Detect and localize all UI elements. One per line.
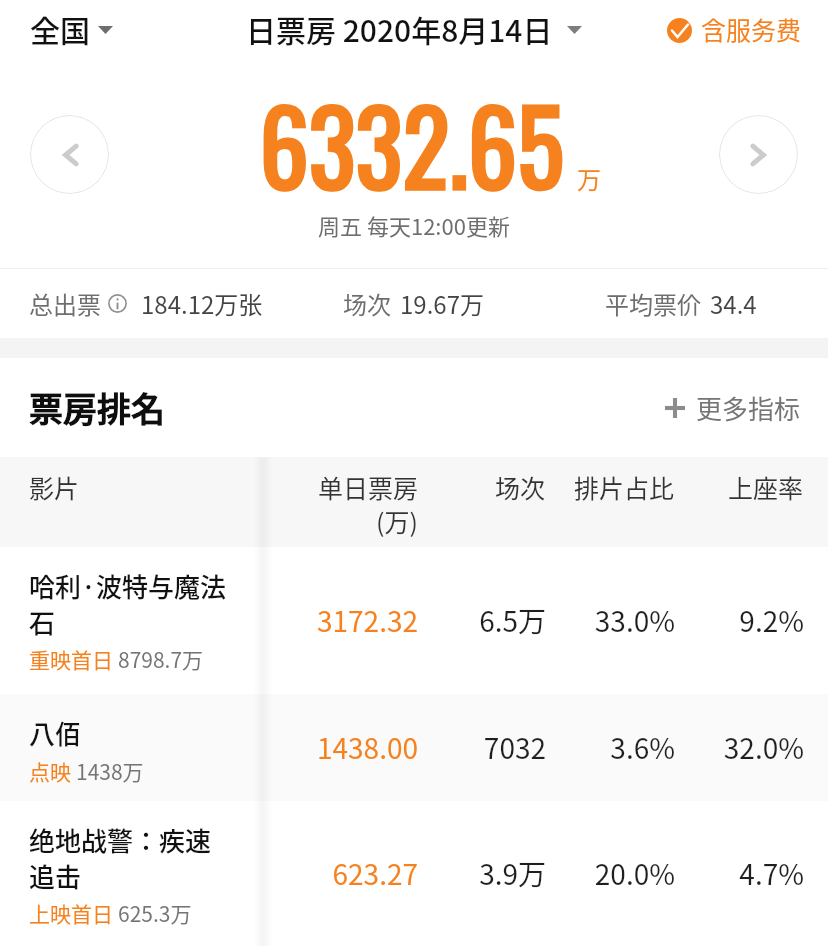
- staticText: 重映首日: [29, 644, 113, 674]
- staticText: 8798.7万: [118, 644, 204, 674]
- staticText: 上座率: [728, 469, 804, 505]
- staticText: 19.67万: [400, 286, 484, 321]
- staticText: 影片: [29, 469, 80, 505]
- staticText: 7032: [483, 727, 546, 768]
- button[interactable]: Previous day: [30, 115, 109, 194]
- button[interactable]: 更多指标: [665, 358, 801, 457]
- staticText: 单日票房 (万): [317, 469, 418, 539]
- button[interactable]: 八佰: [0, 694, 828, 801]
- staticText: 排片占比: [574, 469, 675, 505]
- staticText: 周五 每天12:00更新: [318, 209, 510, 241]
- staticText: 石: [29, 603, 56, 641]
- button[interactable]: Next day: [719, 115, 798, 194]
- staticText: 32.0%: [723, 727, 804, 768]
- staticText: 20.0%: [594, 853, 675, 894]
- staticText: 平均票价: [605, 286, 701, 321]
- button[interactable]: 全国: [30, 0, 113, 58]
- staticText: 更多指标: [696, 389, 801, 427]
- staticText: 总出票: [29, 286, 101, 321]
- staticText: 34.4: [710, 286, 757, 321]
- staticText: 绝地战警：疾速: [29, 821, 212, 859]
- staticText: 625.3万: [118, 898, 192, 928]
- staticText: 9.2%: [739, 600, 804, 641]
- staticText: 3.9万: [479, 853, 546, 894]
- staticText: 万: [577, 161, 601, 196]
- staticText: 1438万: [76, 756, 144, 786]
- staticText: 场次: [495, 469, 546, 505]
- staticText: 1438.00: [316, 727, 418, 768]
- staticText: 全国: [30, 7, 90, 50]
- staticText: 日票房 2020年8月14日: [246, 7, 553, 50]
- staticText: 623.27: [332, 853, 418, 894]
- staticText: 八佰: [29, 714, 82, 752]
- button[interactable]: 绝地战警：疾速: [0, 801, 828, 946]
- staticText: 场次: [343, 286, 391, 321]
- button[interactable]: 含服务费: [667, 0, 802, 59]
- staticText: 3.6%: [610, 727, 675, 768]
- staticText: 6.5万: [479, 600, 546, 641]
- staticText: 33.0%: [594, 600, 675, 641]
- staticText: 184.12万张: [141, 286, 263, 321]
- staticText: 哈利·波特与魔法: [29, 567, 226, 605]
- staticText: 票房排名: [29, 383, 165, 432]
- staticText: 3172.32: [316, 600, 418, 641]
- staticText: 点映: [29, 756, 71, 786]
- staticText: 6332.65: [259, 67, 565, 219]
- staticText: 含服务费: [701, 11, 802, 47]
- button[interactable]: 日票房 2020年8月14日: [246, 0, 582, 58]
- button[interactable]: 哈利·波特与魔法: [0, 547, 828, 694]
- staticText: 上映首日: [29, 898, 113, 928]
- staticText: 4.7%: [739, 853, 804, 894]
- staticText: 追击: [29, 857, 82, 895]
